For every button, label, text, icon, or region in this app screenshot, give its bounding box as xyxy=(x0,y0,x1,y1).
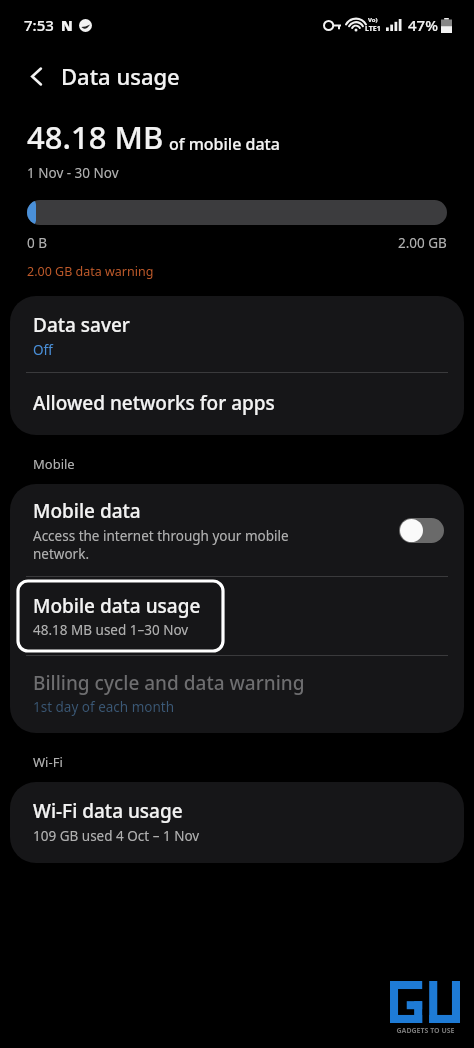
staticText: 0 B xyxy=(27,234,48,252)
staticText: Mobile data usage xyxy=(33,593,201,619)
staticText: Data usage xyxy=(61,61,180,91)
button[interactable]: Wi-Fi data usage xyxy=(10,782,464,863)
staticText: 7:53 xyxy=(24,15,54,35)
staticText: 109 GB used 4 Oct – 1 Nov xyxy=(33,827,200,845)
staticText: LTE1 xyxy=(365,24,381,34)
button[interactable]: Back xyxy=(16,55,58,97)
button[interactable]: Mobile data xyxy=(10,484,464,576)
staticText: 1 Nov - 30 Nov xyxy=(27,164,119,182)
staticText: N xyxy=(61,16,73,35)
staticText: Data saver xyxy=(33,312,130,338)
staticText: 48.18 MB xyxy=(27,116,164,158)
button[interactable]: Mobile data usage xyxy=(18,581,223,651)
staticText: Allowed networks for apps xyxy=(33,390,275,416)
staticText: Wi-Fi xyxy=(33,753,63,771)
staticText: 48.18 MB used 1–30 Nov xyxy=(33,621,189,639)
staticText: Off xyxy=(33,341,53,359)
staticText: Mobile data xyxy=(33,498,141,524)
staticText: 1st day of each month xyxy=(33,698,175,716)
staticText: Billing cycle and data warning xyxy=(33,670,305,696)
staticText: Access the internet through your mobile … xyxy=(33,527,289,563)
staticText: Vo) xyxy=(368,16,378,24)
staticText: GADGETS TO USE xyxy=(396,1026,455,1036)
button[interactable]: Billing cycle and data warning xyxy=(10,656,464,733)
staticText: 2.00 GB xyxy=(398,234,447,252)
staticText: Wi-Fi data usage xyxy=(33,798,183,824)
staticText: 2.00 GB data warning xyxy=(27,263,154,280)
button[interactable]: Allowed networks for apps xyxy=(10,373,464,435)
staticText: Mobile xyxy=(33,455,75,473)
staticText: 47% xyxy=(408,15,438,35)
button[interactable]: Data saver xyxy=(10,296,464,372)
staticText: of mobile data xyxy=(169,133,280,155)
